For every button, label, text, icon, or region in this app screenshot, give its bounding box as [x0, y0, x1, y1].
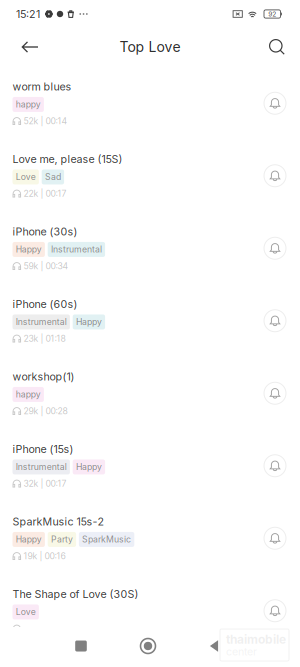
- staticText: Happy: [16, 244, 42, 255]
- staticText: Top Love: [119, 38, 180, 55]
- staticText: 29k | 00:28: [23, 406, 67, 416]
- staticText: Instrumental: [16, 462, 67, 472]
- button[interactable]: Love me, please (15S): [0, 139, 300, 212]
- staticText: 92: [268, 10, 276, 18]
- staticText: 52k | 00:14: [23, 116, 67, 126]
- button[interactable]: workshop(1): [0, 357, 300, 429]
- button[interactable]: Notify: [264, 600, 286, 622]
- button[interactable]: iPhone (60s): [0, 284, 300, 357]
- button[interactable]: worm blues: [0, 67, 300, 139]
- staticText: Instrumental: [51, 244, 102, 255]
- staticText: 32k | 00:17: [23, 478, 66, 489]
- staticText: 22k | 00:17: [23, 188, 66, 199]
- button[interactable]: Notify: [264, 237, 286, 259]
- staticText: Love me, please (15S): [12, 153, 122, 165]
- button[interactable]: The Shape of Love (30S): [0, 574, 300, 647]
- button[interactable]: iPhone (15s): [0, 429, 300, 502]
- staticText: Instrumental: [16, 317, 67, 327]
- button[interactable]: Back: [185, 627, 243, 665]
- button[interactable]: Notify: [264, 92, 286, 114]
- staticText: Happy: [76, 317, 102, 327]
- staticText: SparkMusic: [82, 534, 131, 545]
- button[interactable]: Search: [258, 28, 296, 66]
- button[interactable]: Notify: [264, 527, 286, 549]
- button[interactable]: Notify: [264, 455, 286, 477]
- staticText: happy: [16, 389, 41, 400]
- button[interactable]: Notify: [264, 310, 286, 332]
- staticText: iPhone (60s): [12, 298, 77, 310]
- staticText: iPhone (30s): [12, 225, 77, 238]
- staticText: iPhone (15s): [12, 443, 73, 455]
- button[interactable]: Recent apps: [52, 627, 110, 665]
- staticText: thaimobile: [226, 632, 286, 647]
- staticText: Love: [16, 172, 36, 182]
- staticText: 19k | 00:16: [23, 551, 65, 561]
- staticText: happy: [16, 99, 41, 110]
- staticText: Sad: [45, 172, 61, 182]
- button[interactable]: iPhone (30s): [0, 212, 300, 284]
- staticText: SparkMusic 15s-2: [12, 515, 104, 528]
- staticText: Happy: [16, 534, 42, 545]
- button[interactable]: Notify: [264, 165, 286, 187]
- staticText: Happy: [76, 462, 102, 472]
- button[interactable]: Back: [11, 28, 49, 66]
- staticText: 59k | 00:34: [23, 261, 68, 271]
- button[interactable]: SparkMusic 15s-2: [0, 502, 300, 574]
- staticText: workshop(1): [12, 370, 74, 383]
- staticText: 15:21: [16, 7, 40, 20]
- staticText: center: [226, 645, 257, 658]
- staticText: 23k | 01:18: [23, 333, 65, 344]
- button[interactable]: Notify: [264, 382, 286, 404]
- staticText: Party: [51, 534, 73, 545]
- staticText: The Shape of Love (30S): [12, 588, 138, 600]
- staticText: Love: [16, 607, 36, 617]
- staticText: worm blues: [12, 80, 71, 93]
- button[interactable]: Home: [119, 627, 177, 665]
